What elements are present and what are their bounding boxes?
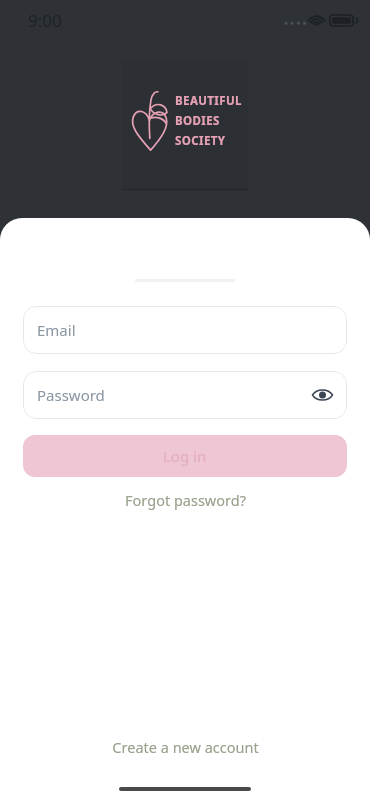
staticText: Password	[37, 385, 105, 405]
staticText: Forgot password?	[125, 490, 246, 510]
button[interactable]: Log in	[23, 435, 347, 477]
staticText: SOCIETY	[175, 133, 226, 149]
staticText: 9:00	[28, 9, 62, 32]
staticText: BODIES	[175, 113, 220, 129]
staticText: Log in	[163, 446, 207, 466]
button[interactable]: Password	[23, 371, 347, 419]
button[interactable]: Forgot password?	[115, 486, 256, 514]
staticText: Create a new account	[112, 737, 259, 757]
button[interactable]: Create a new account	[102, 733, 269, 761]
button[interactable]: Email	[23, 306, 347, 354]
button[interactable]: Show password	[305, 378, 339, 412]
staticText: BEAUTIFUL	[175, 93, 242, 109]
staticText: Email	[37, 320, 76, 340]
